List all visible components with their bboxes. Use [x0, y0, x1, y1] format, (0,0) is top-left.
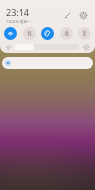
button[interactable]: Brightness [14, 44, 79, 50]
button[interactable]: Bluetooth [60, 27, 73, 40]
staticText: 23:14 [6, 6, 30, 18]
button[interactable]: Auto brightness [82, 43, 90, 51]
button[interactable]: Wi-Fi [4, 27, 17, 40]
button[interactable]: Settings [77, 9, 90, 22]
button[interactable] [2, 57, 93, 69]
button[interactable]: Flashlight [78, 27, 91, 40]
staticText: 1月22日 星期一 [6, 19, 31, 24]
button[interactable]: Auto rotate [41, 27, 54, 40]
button[interactable]: Edit [61, 9, 74, 22]
button[interactable]: Mobile data [23, 27, 36, 40]
